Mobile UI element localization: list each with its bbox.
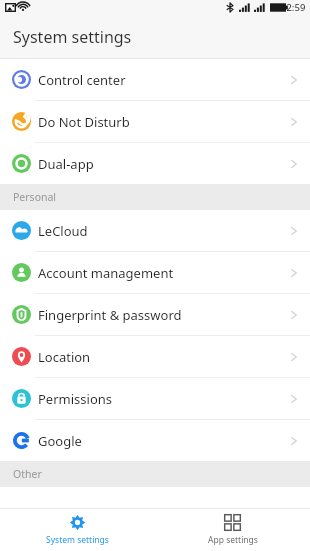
other: Account management — [12, 263, 31, 282]
button[interactable]: Control center — [0, 59, 310, 100]
other: Location — [12, 347, 31, 366]
other: Google — [12, 431, 31, 450]
button[interactable]: Location — [0, 336, 310, 377]
button[interactable]: System settings — [0, 508, 155, 551]
staticText: Control center — [38, 71, 126, 89]
staticText: Personal — [13, 190, 57, 204]
staticText: App settings — [208, 534, 258, 546]
other: LeCloud — [12, 221, 31, 240]
staticText: Other — [13, 467, 42, 481]
other: System settings — [69, 514, 86, 531]
other: Permissions — [12, 389, 31, 408]
button[interactable]: Permissions — [0, 378, 310, 419]
other: Dual-app — [12, 154, 31, 173]
button[interactable]: Account management — [0, 252, 310, 293]
staticText: Permissions — [38, 390, 113, 408]
staticText: System settings — [13, 26, 132, 48]
staticText: Google — [38, 432, 82, 450]
staticText: Do Not Disturb — [38, 113, 130, 131]
button[interactable]: Dual-app — [0, 143, 310, 184]
staticText: System settings — [46, 534, 109, 546]
other: Do Not Disturb — [12, 112, 31, 131]
staticText: Account management — [38, 264, 174, 282]
other: App settings — [224, 514, 241, 531]
staticText: Fingerprint & password — [38, 306, 182, 324]
staticText: 02:59 — [281, 1, 306, 14]
button[interactable]: Google — [0, 420, 310, 461]
staticText: LeCloud — [38, 222, 88, 240]
button[interactable]: App settings — [155, 508, 310, 551]
button[interactable]: Do Not Disturb — [0, 101, 310, 142]
other: Fingerprint and password — [12, 305, 31, 324]
other: Control center — [12, 70, 31, 89]
staticText: Dual-app — [38, 155, 94, 173]
button[interactable]: LeCloud — [0, 210, 310, 251]
staticText: Location — [38, 348, 91, 366]
button[interactable]: Fingerprint and password — [0, 294, 310, 335]
